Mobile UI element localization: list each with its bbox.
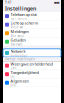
staticText: Alle apps <box>10 34 23 38</box>
button[interactable]: Meldingen <box>3 29 61 37</box>
staticText: Telefoon op slot <box>10 12 36 17</box>
staticText: Meldingen <box>10 29 28 34</box>
staticText: Na 1 minuut <box>10 17 27 20</box>
staticText: 9:41 <box>5 1 12 4</box>
staticText: Toegankelijkheid <box>10 70 38 75</box>
staticText: ◼◼▮ <box>54 1 59 4</box>
staticText: Netwerk <box>10 48 25 54</box>
button[interactable]: Telefoon op slot <box>3 12 61 20</box>
button[interactable]: Weergave en helderheid <box>3 61 61 70</box>
staticText: Altijd aan <box>10 25 23 29</box>
staticText: Uit <box>10 75 14 79</box>
button[interactable]: Toegankelijkheid <box>3 70 61 78</box>
staticText: Standaard <box>10 43 22 46</box>
button[interactable]: Geluiden <box>3 38 61 46</box>
staticText: Geluiden <box>10 37 25 43</box>
staticText: Verbonden <box>10 54 27 57</box>
staticText: Instellingen <box>5 5 36 12</box>
staticText: Overige instellingen <box>5 57 35 61</box>
staticText: Weergave en helderheid <box>10 61 52 66</box>
button[interactable]: Netwerk <box>3 49 61 57</box>
staticText: Info <box>10 84 16 87</box>
button[interactable]: Algemeen <box>3 79 61 87</box>
staticText: Licht <box>10 66 16 70</box>
button[interactable]: Licht op scherm <box>3 20 61 29</box>
staticText: Licht op scherm <box>10 20 38 25</box>
staticText: Algemeen <box>10 78 28 84</box>
